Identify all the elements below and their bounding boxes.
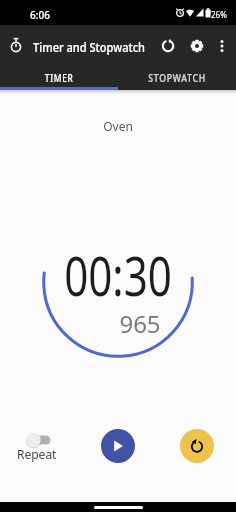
staticText: STOPWATCH bbox=[148, 71, 207, 85]
staticText: 6:06 bbox=[30, 8, 50, 22]
button[interactable] bbox=[187, 36, 207, 56]
staticText: 00:30 bbox=[26, 238, 210, 312]
staticText: Oven bbox=[0, 118, 236, 134]
staticText: Repeat bbox=[17, 446, 57, 462]
staticText: TIMER bbox=[45, 71, 74, 85]
staticText: 965 bbox=[22, 307, 236, 340]
button[interactable] bbox=[101, 429, 135, 463]
button[interactable]: Repeat bbox=[14, 428, 60, 464]
button[interactable] bbox=[212, 36, 232, 56]
button[interactable] bbox=[6, 36, 26, 56]
button[interactable] bbox=[158, 36, 178, 56]
button[interactable]: TIMER bbox=[0, 66, 118, 90]
button[interactable]: STOPWATCH bbox=[118, 66, 236, 90]
staticText: 26% bbox=[211, 9, 227, 20]
button[interactable] bbox=[180, 429, 214, 463]
staticText: Timer and Stopwatch bbox=[33, 38, 145, 56]
